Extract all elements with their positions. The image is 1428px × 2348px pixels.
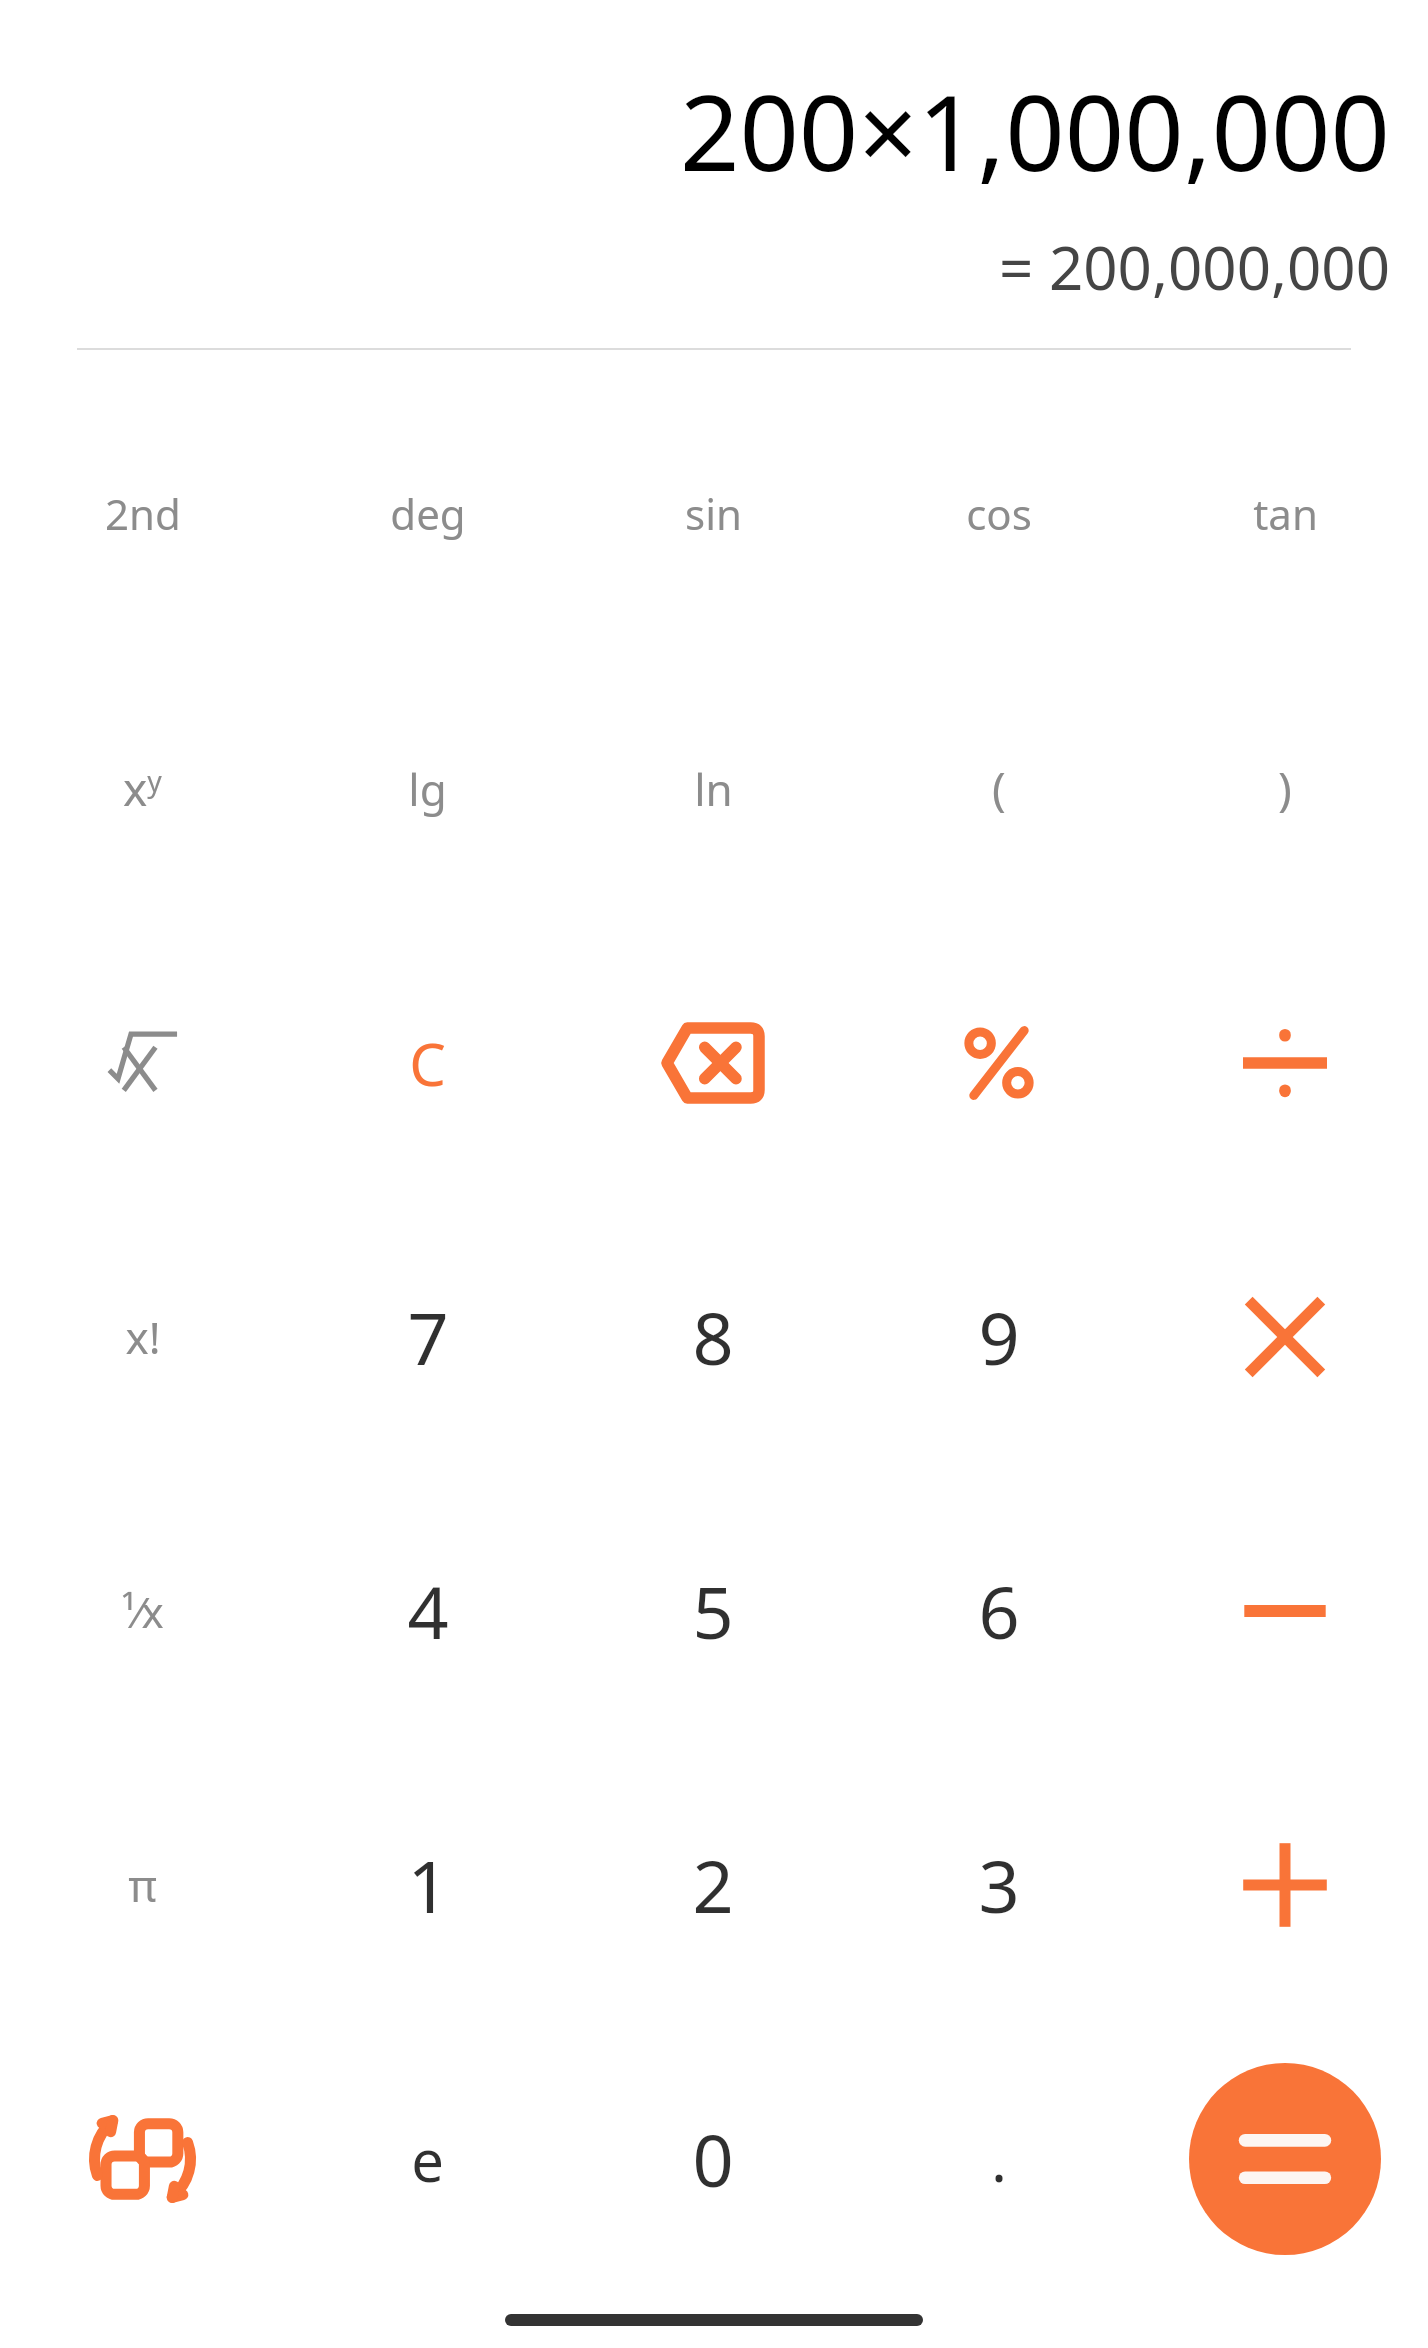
- button[interactable]: deg: [285, 376, 570, 651]
- staticText: = 200,000,000: [999, 226, 1390, 308]
- button[interactable]: xy: [0, 651, 285, 926]
- button[interactable]: cos: [856, 376, 1142, 651]
- button[interactable]: Divide: [1142, 926, 1428, 1200]
- button[interactable]: ¹⁄x: [0, 1474, 285, 1748]
- button[interactable]: π: [0, 1748, 285, 2022]
- staticText: .: [991, 2120, 1007, 2199]
- button[interactable]: 2nd: [0, 376, 285, 651]
- staticText: sin: [685, 485, 742, 542]
- staticText: C: [409, 1024, 446, 1103]
- staticText: 9: [978, 1288, 1020, 1386]
- button[interactable]: 2: [570, 1748, 856, 2022]
- button[interactable]: 3: [856, 1748, 1142, 2022]
- button[interactable]: 1: [285, 1748, 570, 2022]
- button[interactable]: tan: [1142, 376, 1428, 651]
- button[interactable]: Equals: [1189, 2063, 1381, 2255]
- staticText: 8: [692, 1288, 734, 1386]
- staticText: e: [411, 2120, 444, 2199]
- staticText: (: [992, 757, 1006, 820]
- button[interactable]: lg: [285, 651, 570, 926]
- button[interactable]: e: [285, 2022, 570, 2296]
- button[interactable]: Unit converter: [0, 2022, 285, 2296]
- button[interactable]: Backspace: [570, 926, 856, 1200]
- button[interactable]: 9: [856, 1200, 1142, 1474]
- button[interactable]: 6: [856, 1474, 1142, 1748]
- button[interactable]: sin: [570, 376, 856, 651]
- staticText: xy: [123, 757, 162, 820]
- staticText: cos: [966, 485, 1032, 542]
- staticText: 3: [978, 1836, 1020, 1934]
- button[interactable]: ln: [570, 651, 856, 926]
- button[interactable]: (: [856, 651, 1142, 926]
- staticText: 2nd: [105, 485, 181, 542]
- staticText: ln: [694, 759, 733, 819]
- staticText: 5: [692, 1562, 734, 1660]
- button[interactable]: Add: [1142, 1748, 1428, 2022]
- staticText: 0: [692, 2110, 734, 2208]
- staticText: ¹⁄x: [121, 1583, 164, 1640]
- staticText: 2: [692, 1836, 734, 1934]
- staticText: 6: [978, 1562, 1020, 1660]
- button[interactable]: Percent: [856, 926, 1142, 1200]
- staticText: ): [1278, 757, 1292, 820]
- staticText: deg: [390, 485, 466, 542]
- button[interactable]: ): [1142, 651, 1428, 926]
- staticText: tan: [1253, 485, 1318, 542]
- staticText: π: [128, 1855, 157, 1915]
- staticText: 200×1,000,000: [679, 60, 1390, 202]
- button[interactable]: Clear: [285, 926, 570, 1200]
- button[interactable]: 4: [285, 1474, 570, 1748]
- button[interactable]: .: [856, 2022, 1142, 2296]
- button[interactable]: Square root: [0, 926, 285, 1200]
- button[interactable]: 8: [570, 1200, 856, 1474]
- button[interactable]: Multiply: [1142, 1200, 1428, 1474]
- staticText: 4: [407, 1562, 449, 1660]
- button[interactable]: x!: [0, 1200, 285, 1474]
- staticText: 1: [407, 1836, 449, 1934]
- button[interactable]: Subtract: [1142, 1474, 1428, 1748]
- staticText: lg: [408, 759, 447, 819]
- staticText: 7: [407, 1288, 449, 1386]
- staticText: x!: [125, 1307, 161, 1367]
- button[interactable]: 5: [570, 1474, 856, 1748]
- button[interactable]: 0: [570, 2022, 856, 2296]
- button[interactable]: 7: [285, 1200, 570, 1474]
